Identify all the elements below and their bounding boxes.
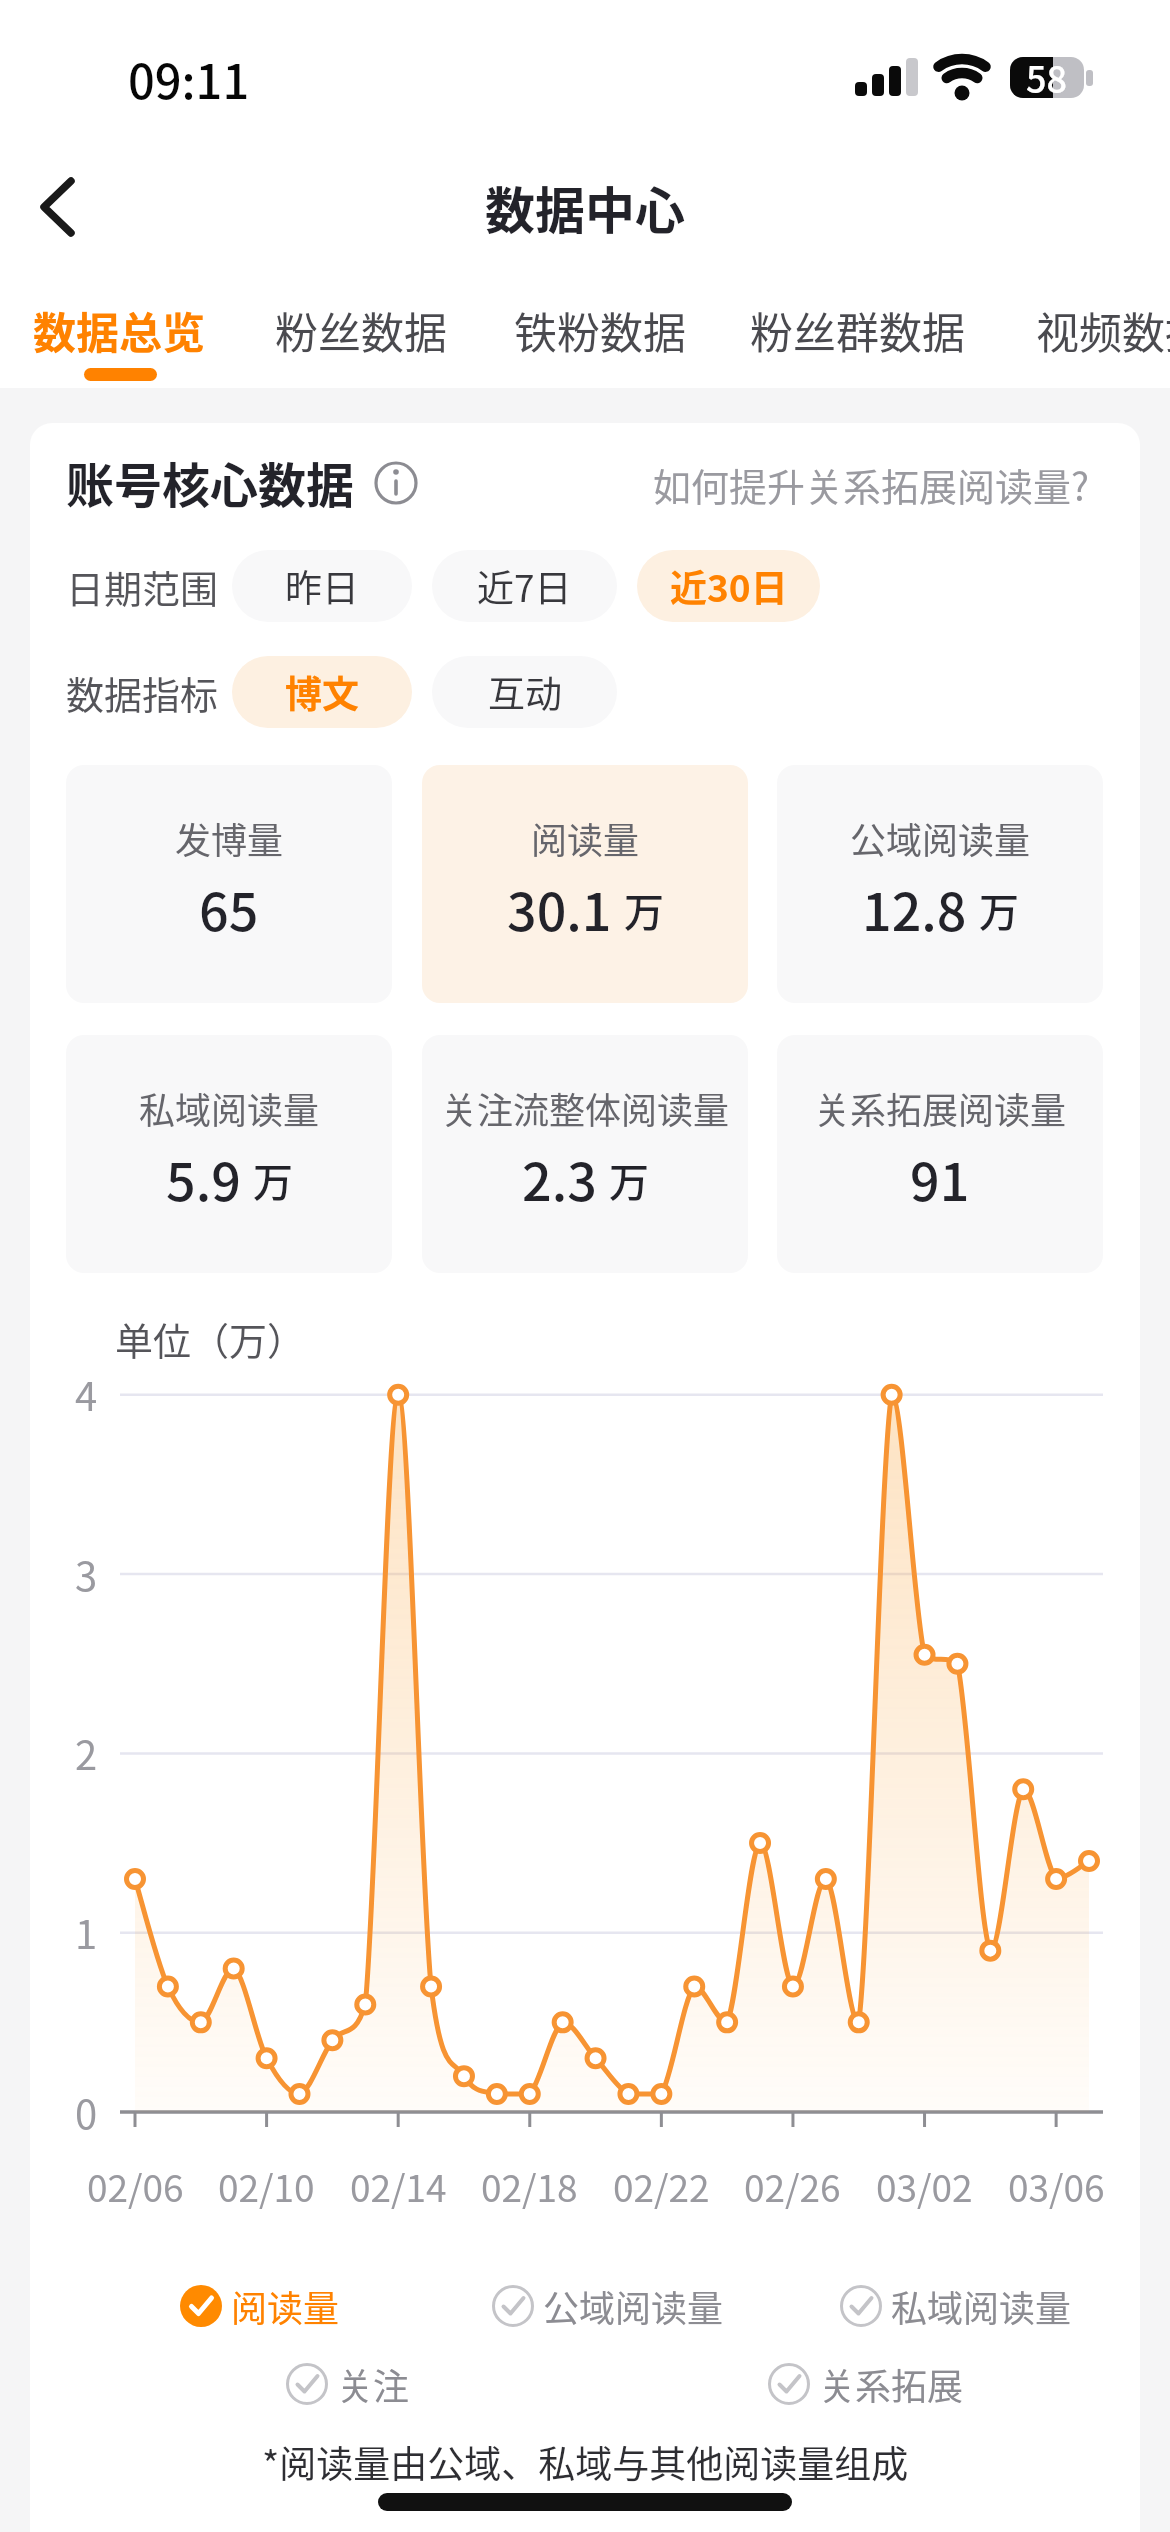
button[interactable]: 如何提升关系拓展阅读量? — [620, 440, 1090, 528]
staticText: 02/22 — [613, 2159, 710, 2213]
button[interactable]: 关注流整体阅读量 — [422, 1035, 748, 1273]
staticText: 0 — [75, 2083, 98, 2141]
staticText: 数据指标 — [66, 665, 219, 720]
staticText: 数据总览 — [33, 299, 205, 361]
staticText: 互动 — [488, 665, 562, 719]
staticText: 视频数据 — [1036, 299, 1170, 361]
staticText: 3 — [75, 1545, 98, 1603]
staticText: 65 — [199, 871, 259, 946]
staticText: 私域阅读量 — [139, 1082, 320, 1134]
button[interactable]: 粉丝数据 — [259, 290, 463, 370]
button[interactable]: 互动 — [432, 656, 617, 728]
staticText: 2 — [75, 1724, 98, 1782]
staticText: 发博量 — [175, 812, 284, 864]
staticText: 02/10 — [218, 2159, 315, 2213]
button[interactable]: 铁粉数据 — [498, 290, 702, 370]
staticText: 91 — [910, 1141, 970, 1216]
staticText: 博文 — [285, 665, 359, 719]
button[interactable]: 阅读量 — [422, 765, 748, 1003]
staticText: 2.3 — [522, 1141, 597, 1216]
staticText: 5.9 — [166, 1141, 241, 1216]
button[interactable]: 私域阅读量 — [839, 2270, 1072, 2342]
staticText: 关系拓展阅读量 — [814, 1082, 1067, 1134]
button[interactable]: 公域阅读量 — [491, 2270, 724, 2342]
staticText: 阅读量 — [531, 812, 640, 864]
staticText: 粉丝数据 — [275, 299, 447, 361]
staticText: 30.1 — [507, 871, 612, 946]
staticText: 12.8 — [862, 871, 967, 946]
button[interactable]: 数据总览 — [17, 290, 221, 370]
staticText: 03/02 — [876, 2159, 973, 2213]
button[interactable]: 阅读量 — [179, 2270, 340, 2342]
staticText: 账号核心数据 — [66, 447, 355, 517]
staticText: 关注流整体阅读量 — [441, 1082, 730, 1134]
staticText: 万 — [624, 881, 664, 939]
button[interactable]: 粉丝群数据 — [734, 290, 981, 370]
staticText: 近30日 — [670, 559, 788, 613]
staticText: 公域阅读量 — [850, 812, 1031, 864]
staticText: 02/26 — [744, 2159, 841, 2213]
staticText: 粉丝群数据 — [750, 299, 965, 361]
staticText: 如何提升关系拓展阅读量? — [653, 457, 1090, 512]
button[interactable]: 公域阅读量 — [777, 765, 1103, 1003]
staticText: 铁粉数据 — [514, 299, 686, 361]
button[interactable]: 关系拓展阅读量 — [777, 1035, 1103, 1273]
staticText: 万 — [253, 1151, 293, 1209]
staticText: 数据中心 — [485, 171, 685, 243]
staticText: 58 — [1026, 51, 1068, 103]
staticText: 4 — [75, 1365, 98, 1423]
staticText: 02/18 — [481, 2159, 578, 2213]
staticText: 关注 — [337, 2358, 410, 2410]
staticText: 02/14 — [350, 2159, 447, 2213]
button[interactable]: 私域阅读量 — [66, 1035, 392, 1273]
staticText: 日期范围 — [66, 559, 219, 614]
staticText: 09:11 — [128, 44, 250, 112]
staticText: 近7日 — [477, 559, 572, 613]
staticText: 02/06 — [87, 2159, 184, 2213]
button[interactable]: 关注 — [285, 2348, 410, 2420]
button[interactable]: 博文 — [232, 656, 412, 728]
staticText: 公域阅读量 — [543, 2280, 724, 2332]
button[interactable]: 发博量 — [66, 765, 392, 1003]
staticText: 私域阅读量 — [891, 2280, 1072, 2332]
button[interactable]: 昨日 — [232, 550, 412, 622]
staticText: 万 — [609, 1151, 649, 1209]
staticText: 关系拓展 — [819, 2358, 964, 2410]
staticText: *阅读量由公域、私域与其他阅读量组成 — [262, 2435, 909, 2489]
staticText: 单位（万） — [115, 1311, 306, 1366]
staticText: 1 — [75, 1903, 98, 1961]
button[interactable]: 近7日 — [432, 550, 617, 622]
button[interactable]: 近30日 — [637, 550, 820, 622]
button[interactable]: 视频数据 — [1020, 290, 1170, 370]
staticText: 阅读量 — [231, 2280, 340, 2332]
button[interactable]: 关系拓展 — [767, 2348, 964, 2420]
button[interactable] — [14, 160, 104, 255]
staticText: 03/06 — [1008, 2159, 1105, 2213]
staticText: 万 — [979, 881, 1019, 939]
staticText: 昨日 — [285, 559, 359, 613]
